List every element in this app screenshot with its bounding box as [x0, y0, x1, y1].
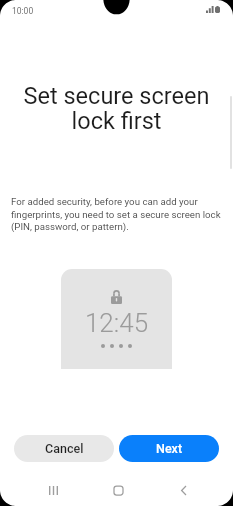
staticText: Next [156, 441, 183, 456]
button[interactable]: Home [98, 477, 138, 503]
staticText: Set secure screen lock first [12, 82, 221, 135]
staticText: 12:45 [61, 308, 172, 338]
button[interactable]: Back [163, 477, 203, 503]
button[interactable]: Recent apps [33, 477, 73, 503]
staticText: Cancel [45, 441, 84, 456]
button[interactable]: Next [119, 435, 219, 462]
staticText: 10:00 [12, 6, 34, 16]
button[interactable]: Cancel [14, 435, 114, 462]
staticText: For added security, before you can add y… [11, 196, 227, 232]
